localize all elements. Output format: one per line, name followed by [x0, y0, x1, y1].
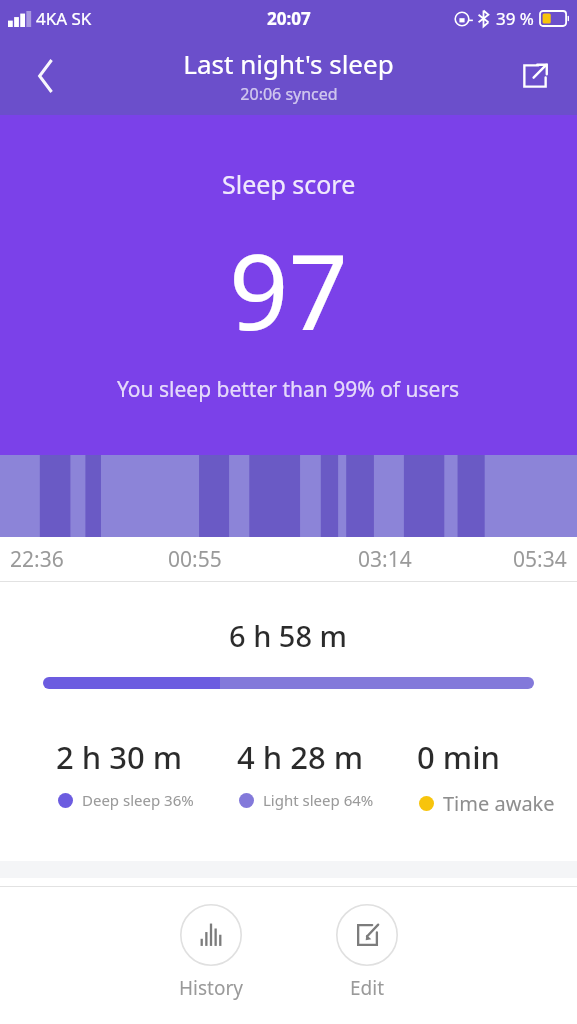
staticText: Light sleep 64% [263, 790, 374, 810]
staticText: 6 h 58 m [229, 616, 348, 655]
staticText: You sleep better than 99% of users [117, 375, 460, 404]
staticText: 22:36 [10, 545, 64, 574]
staticText: 0 min [417, 736, 500, 778]
staticText: Edit [350, 975, 385, 1001]
staticText: 2 h 30 m [56, 736, 183, 778]
staticText: 20:06 synced [240, 83, 338, 105]
staticText: 05:34 [513, 545, 567, 574]
staticText: 97 [229, 219, 348, 361]
staticText: Last night's sleep [183, 46, 394, 81]
button[interactable]: History [157, 887, 265, 1001]
staticText: 4 h 28 m [237, 736, 364, 778]
staticText: 00:55 [168, 545, 222, 574]
staticText: Sleep score [222, 167, 356, 201]
button[interactable]: 0 min [379, 736, 559, 817]
staticText: 03:14 [358, 545, 412, 574]
button[interactable]: Back [22, 52, 70, 100]
staticText: Time awake [443, 790, 555, 817]
staticText: 4KA SK [36, 7, 92, 30]
staticText: 39 % [496, 7, 534, 30]
button[interactable]: Share [511, 52, 559, 100]
staticText: 20:07 [267, 7, 311, 30]
staticText: Deep sleep 36% [82, 790, 194, 810]
staticText: History [179, 975, 243, 1001]
button[interactable]: 2 h 30 m [18, 736, 199, 810]
button[interactable]: Edit [313, 887, 421, 1001]
button[interactable]: 4 h 28 m [199, 736, 379, 810]
